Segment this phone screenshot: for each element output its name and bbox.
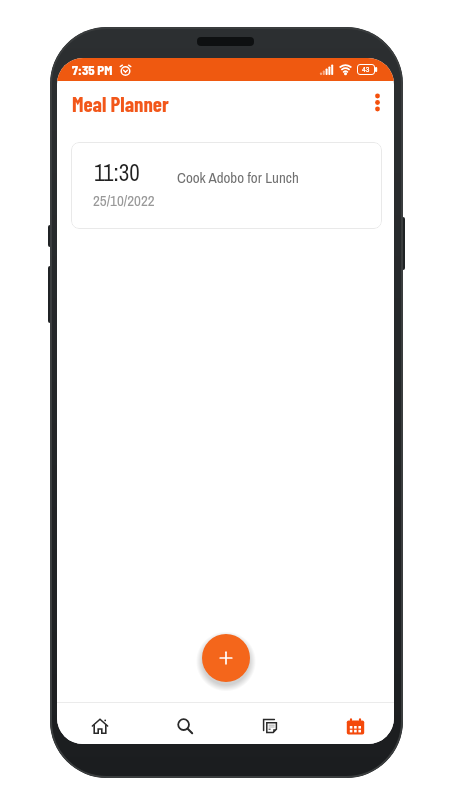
staticText: 25/10/2022: [93, 190, 155, 210]
staticText: Cook Adobo for Lunch: [177, 167, 299, 187]
button[interactable]: [249, 708, 291, 744]
button[interactable]: 11:30: [71, 142, 382, 229]
staticText: 7:35 PM: [72, 62, 113, 78]
button[interactable]: [363, 88, 391, 120]
button[interactable]: [79, 708, 121, 744]
staticText: 11:30: [94, 157, 140, 188]
button[interactable]: [334, 708, 376, 744]
staticText: 43: [362, 66, 370, 74]
button[interactable]: [164, 708, 206, 744]
staticText: Meal Planner: [72, 91, 169, 116]
button[interactable]: [202, 634, 250, 682]
